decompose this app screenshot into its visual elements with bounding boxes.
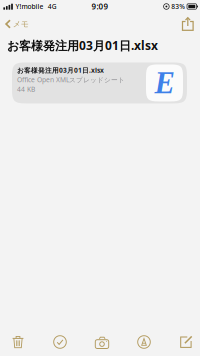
staticText: 9:09	[91, 1, 108, 12]
staticText: メモ	[13, 19, 29, 29]
button[interactable]: Share	[176, 13, 200, 35]
staticText: 44 KB	[17, 85, 35, 94]
staticText: お客様発注用03月01日.xlsx	[7, 37, 158, 53]
button[interactable]: Insert photo	[84, 328, 120, 356]
button[interactable]: メモ	[0, 13, 35, 35]
staticText: Office Open XMLスプレッドシート	[17, 75, 125, 84]
staticText: お客様発注用03月01日.xlsx	[17, 66, 104, 75]
staticText: 4G	[48, 2, 57, 11]
staticText: 83%	[171, 2, 185, 11]
button[interactable]: Checklist	[42, 328, 78, 356]
button[interactable]: Compose	[168, 328, 200, 356]
button[interactable]: Markup	[126, 328, 162, 356]
staticText: Y!mobile	[16, 2, 44, 11]
staticText: E	[154, 66, 174, 100]
button[interactable]: お客様発注用03月01日.xlsx	[12, 62, 187, 103]
button[interactable]: Delete	[0, 328, 36, 356]
